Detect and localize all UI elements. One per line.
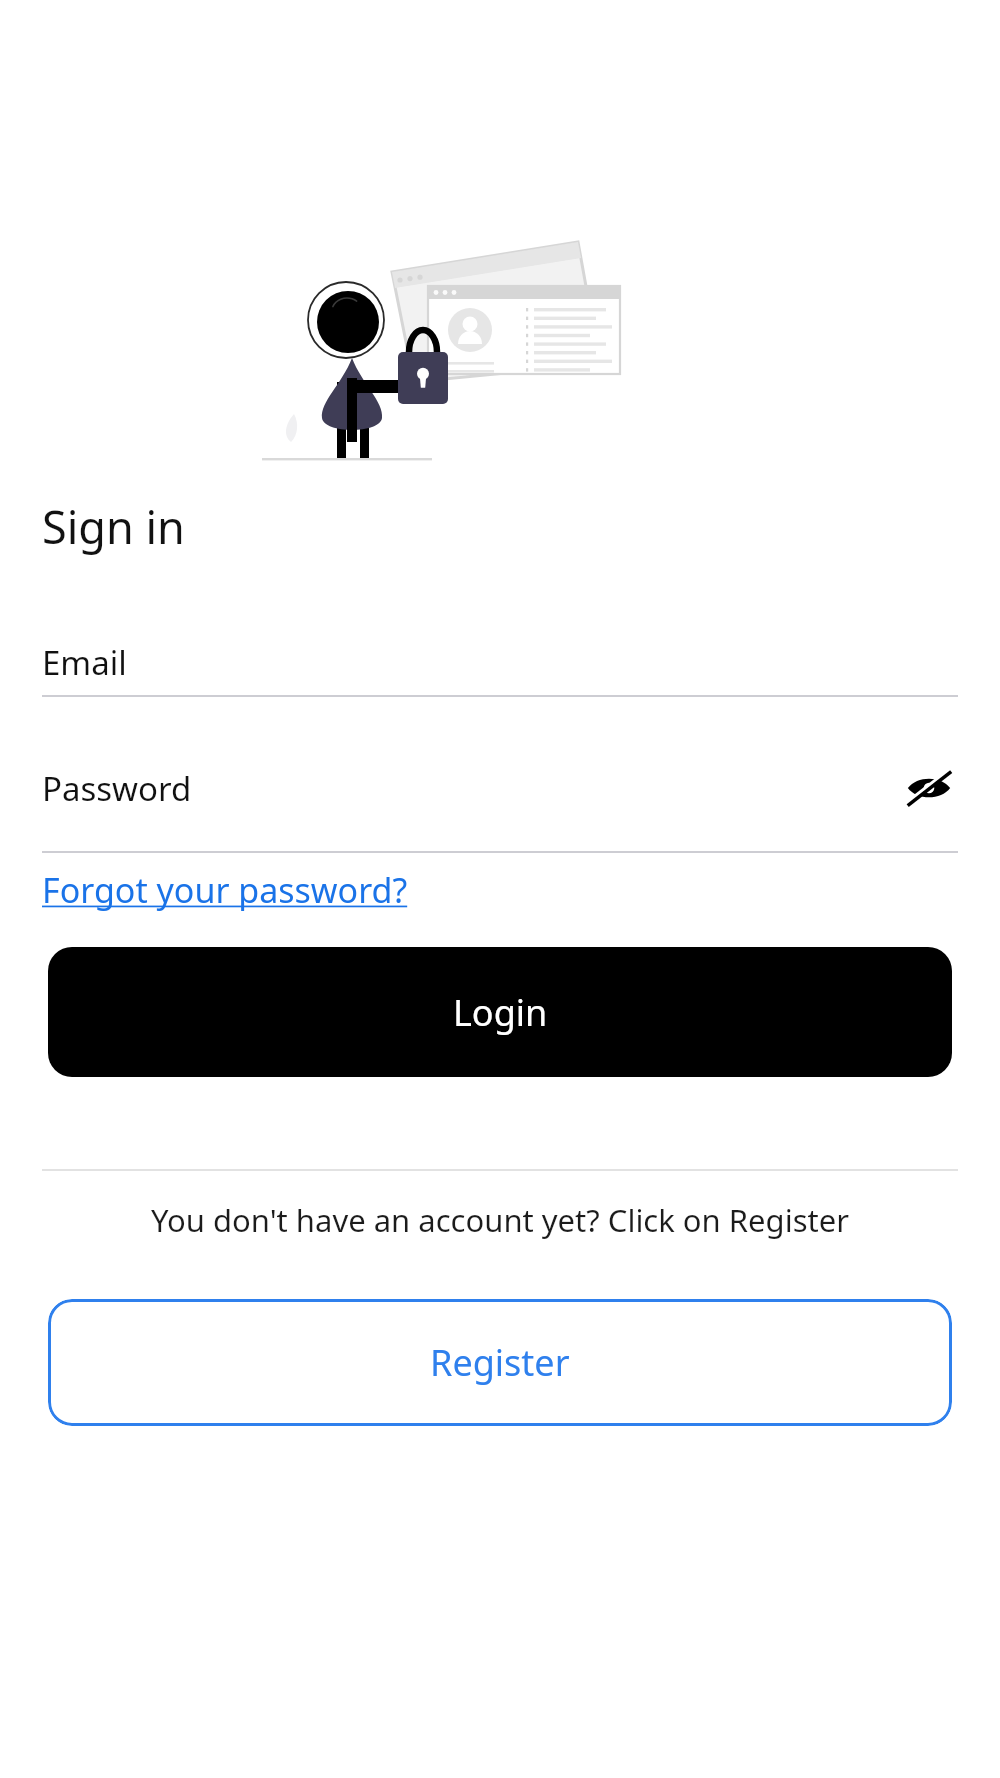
staticText: Email — [42, 640, 127, 685]
staticText: Password — [42, 766, 192, 811]
staticText: Forgot your password? — [42, 867, 408, 913]
staticText: Register — [430, 1338, 570, 1387]
button[interactable]: Login — [48, 947, 952, 1077]
staticText: You don't have an account yet? Click on … — [151, 1199, 849, 1241]
button[interactable]: Email — [42, 629, 958, 695]
staticText: Login — [453, 988, 548, 1037]
button[interactable]: Show password — [900, 759, 958, 817]
button[interactable]: Register — [48, 1299, 952, 1426]
button[interactable]: Password — [42, 755, 958, 821]
staticText: Sign in — [42, 496, 185, 557]
button[interactable]: Forgot your password? — [42, 867, 408, 913]
